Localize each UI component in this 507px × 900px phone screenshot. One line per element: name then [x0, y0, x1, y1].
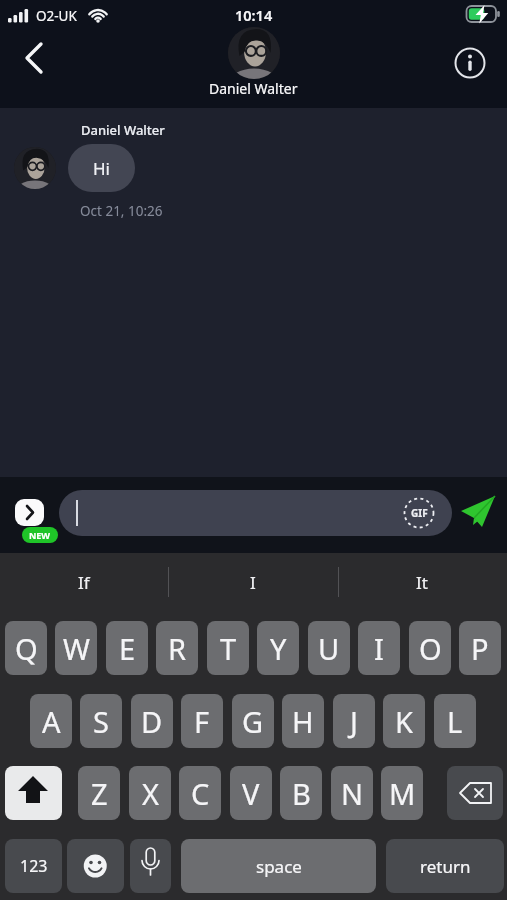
- staticText: I: [250, 571, 256, 594]
- button[interactable]: U: [308, 621, 350, 675]
- button[interactable]: [130, 839, 171, 893]
- staticText: T: [220, 629, 237, 668]
- staticText: V: [242, 774, 260, 813]
- button[interactable]: M: [381, 766, 423, 820]
- button[interactable]: [453, 46, 487, 80]
- button[interactable]: I: [169, 560, 337, 604]
- button[interactable]: F: [181, 694, 223, 748]
- staticText: S: [93, 702, 109, 741]
- button[interactable]: Hi: [68, 144, 135, 192]
- staticText: R: [168, 629, 187, 668]
- staticText: X: [142, 774, 159, 813]
- button[interactable]: R: [156, 621, 198, 675]
- button[interactable]: X: [129, 766, 171, 820]
- staticText: C: [191, 774, 210, 813]
- button[interactable]: B: [280, 766, 322, 820]
- button[interactable]: [14, 147, 56, 189]
- button[interactable]: 123: [5, 839, 62, 893]
- staticText: space: [256, 855, 302, 878]
- button[interactable]: S: [80, 694, 122, 748]
- staticText: If: [78, 571, 90, 594]
- button[interactable]: [228, 27, 280, 79]
- staticText: W: [63, 629, 90, 668]
- button[interactable]: GIF: [403, 497, 435, 529]
- staticText: O2-UK: [36, 7, 77, 25]
- staticText: GIF: [411, 506, 428, 520]
- staticText: I: [374, 629, 384, 668]
- button[interactable]: It: [338, 560, 506, 604]
- staticText: N: [341, 774, 364, 813]
- button[interactable]: Y: [257, 621, 299, 675]
- button[interactable]: [15, 499, 44, 526]
- staticText: 123: [20, 855, 48, 877]
- button[interactable]: [5, 766, 62, 820]
- button[interactable]: O: [409, 621, 451, 675]
- button[interactable]: W: [55, 621, 97, 675]
- staticText: G: [242, 702, 264, 741]
- staticText: Z: [91, 774, 108, 813]
- staticText: J: [350, 702, 358, 741]
- staticText: H: [292, 702, 314, 741]
- staticText: B: [292, 774, 311, 813]
- staticText: Hi: [93, 157, 110, 180]
- button[interactable]: T: [207, 621, 249, 675]
- staticText: Y: [270, 629, 287, 668]
- button[interactable]: Z: [78, 766, 120, 820]
- button[interactable]: space: [181, 839, 376, 893]
- staticText: Daniel Walter: [81, 121, 165, 139]
- button[interactable]: [14, 38, 54, 78]
- staticText: K: [395, 702, 413, 741]
- button[interactable]: NEW: [22, 527, 58, 543]
- staticText: 10:14: [235, 5, 273, 25]
- button[interactable]: C: [179, 766, 221, 820]
- staticText: E: [119, 629, 136, 668]
- staticText: Q: [15, 629, 38, 668]
- button[interactable]: I: [358, 621, 400, 675]
- button[interactable]: N: [331, 766, 373, 820]
- staticText: A: [42, 702, 61, 741]
- button[interactable]: E: [106, 621, 148, 675]
- button[interactable]: P: [459, 621, 501, 675]
- button[interactable]: J: [333, 694, 375, 748]
- button[interactable]: K: [383, 694, 425, 748]
- staticText: U: [318, 629, 340, 668]
- button[interactable]: [459, 494, 497, 530]
- button[interactable]: H: [282, 694, 324, 748]
- button[interactable]: D: [131, 694, 173, 748]
- staticText: return: [420, 855, 471, 878]
- button[interactable]: [447, 766, 503, 820]
- staticText: It: [416, 571, 428, 594]
- button[interactable]: G: [232, 694, 274, 748]
- button[interactable]: A: [30, 694, 72, 748]
- staticText: D: [141, 702, 163, 741]
- button[interactable]: return: [386, 839, 504, 893]
- staticText: O: [419, 629, 442, 668]
- button[interactable]: [67, 839, 124, 893]
- button[interactable]: L: [434, 694, 476, 748]
- staticText: P: [471, 629, 489, 668]
- staticText: F: [194, 702, 210, 741]
- staticText: Oct 21, 10:26: [80, 202, 163, 220]
- button[interactable]: Q: [5, 621, 47, 675]
- button[interactable]: [59, 490, 452, 536]
- button[interactable]: If: [0, 560, 168, 604]
- staticText: NEW: [29, 529, 51, 541]
- staticText: L: [447, 702, 463, 741]
- staticText: Daniel Walter: [209, 79, 298, 98]
- button[interactable]: V: [230, 766, 272, 820]
- staticText: M: [389, 774, 416, 813]
